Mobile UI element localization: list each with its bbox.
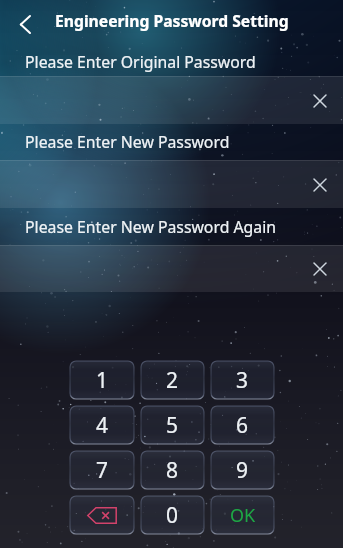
- button[interactable]: 3: [211, 361, 274, 399]
- button[interactable]: Clear: [308, 89, 332, 113]
- button[interactable]: 4: [70, 406, 134, 444]
- staticText: 3: [236, 366, 249, 395]
- button[interactable]: 0: [141, 496, 204, 534]
- staticText: 9: [236, 456, 249, 485]
- staticText: 8: [166, 456, 179, 485]
- staticText: 4: [96, 411, 109, 440]
- button[interactable]: Backspace: [70, 496, 134, 534]
- staticText: Engineering Password Setting: [55, 10, 289, 31]
- staticText: Please Enter New Password Again: [25, 216, 276, 238]
- button[interactable]: Clear: [0, 246, 343, 292]
- staticText: 1: [96, 366, 109, 395]
- staticText: Please Enter Original Password: [25, 51, 256, 73]
- button[interactable]: 5: [141, 406, 204, 444]
- button[interactable]: 9: [211, 451, 274, 489]
- staticText: 2: [166, 366, 179, 395]
- staticText: 0: [166, 501, 179, 530]
- button[interactable]: Clear: [308, 257, 332, 281]
- staticText: 6: [236, 411, 249, 440]
- button[interactable]: 8: [141, 451, 204, 489]
- button[interactable]: 2: [141, 361, 204, 399]
- button[interactable]: OK: [211, 496, 274, 534]
- staticText: OK: [230, 503, 256, 528]
- staticText: Please Enter New Password: [25, 131, 230, 153]
- button[interactable]: 7: [70, 451, 134, 489]
- button[interactable]: Clear: [0, 77, 343, 124]
- button[interactable]: Clear: [308, 173, 332, 197]
- button[interactable]: 6: [211, 406, 274, 444]
- button[interactable]: Back: [9, 8, 41, 40]
- button[interactable]: 1: [70, 361, 134, 399]
- staticText: 7: [96, 456, 109, 485]
- button[interactable]: Clear: [0, 161, 343, 208]
- staticText: 5: [166, 411, 179, 440]
